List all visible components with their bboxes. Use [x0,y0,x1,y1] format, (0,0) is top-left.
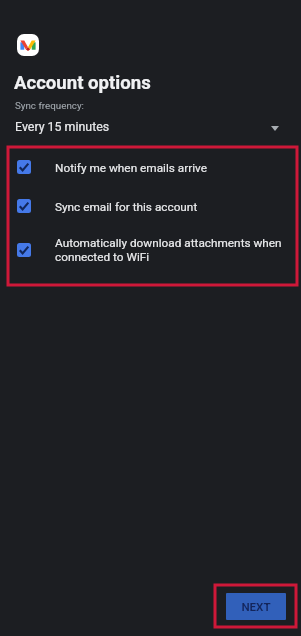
staticText: Sync email for this account [55,200,293,214]
staticText: Sync frequency: [15,100,84,111]
staticText: NEXT [241,600,271,614]
staticText: Every 15 minutes [15,119,110,134]
staticText: Account options [14,72,151,94]
button[interactable]: Automatically download attachments when … [0,230,301,270]
button[interactable]: Sync email for this account [0,192,301,220]
other: Expand sync frequency [271,126,279,131]
button[interactable]: Every 15 minutes [0,115,301,140]
staticText: Notify me when emails arrive [55,161,293,175]
staticText: Automatically download attachments when … [55,236,293,264]
button[interactable]: Notify me when emails arrive [0,153,301,181]
button[interactable]: NEXT [226,593,286,620]
